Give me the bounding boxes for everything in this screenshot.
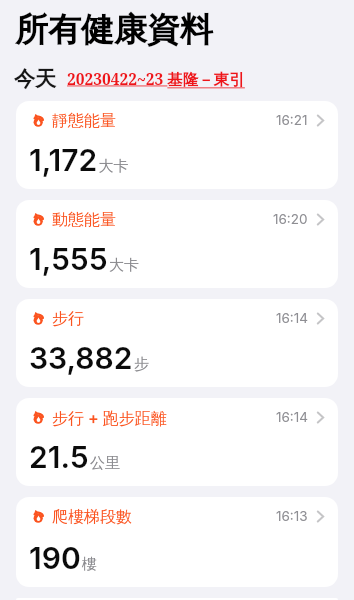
staticText: 靜態能量 [52, 111, 116, 131]
staticText: 16:20 [273, 211, 308, 227]
staticText: 爬樓梯段數 [52, 507, 132, 527]
staticText: 步行 [52, 309, 84, 329]
staticText: 動態能量 [52, 210, 116, 230]
staticText: 步行 + 跑步距離 [52, 408, 167, 428]
button[interactable]: 靜態能量 [16, 101, 338, 189]
staticText: 1,555 大卡 [29, 241, 139, 277]
staticText: 16:14 [276, 310, 308, 326]
button[interactable]: 步行 + 跑步距離 [16, 398, 338, 486]
staticText: 21.5 公里 [29, 439, 120, 475]
staticText: 今天 [14, 66, 56, 92]
button[interactable]: 動態能量 [16, 200, 338, 288]
staticText: 16:13 [276, 508, 308, 524]
button[interactable]: 20230422~23 基隆－東引 [67, 68, 245, 89]
staticText: 16:21 [276, 112, 308, 128]
staticText: 1,172 大卡 [29, 142, 129, 178]
staticText: 190 樓 [29, 540, 98, 576]
staticText: 16:14 [276, 409, 308, 425]
button[interactable]: 步行 [16, 299, 338, 387]
staticText: 33,882 步 [29, 340, 149, 376]
staticText: 所有健康資料 [15, 9, 213, 51]
button[interactable]: 爬樓梯段數 [16, 497, 338, 587]
